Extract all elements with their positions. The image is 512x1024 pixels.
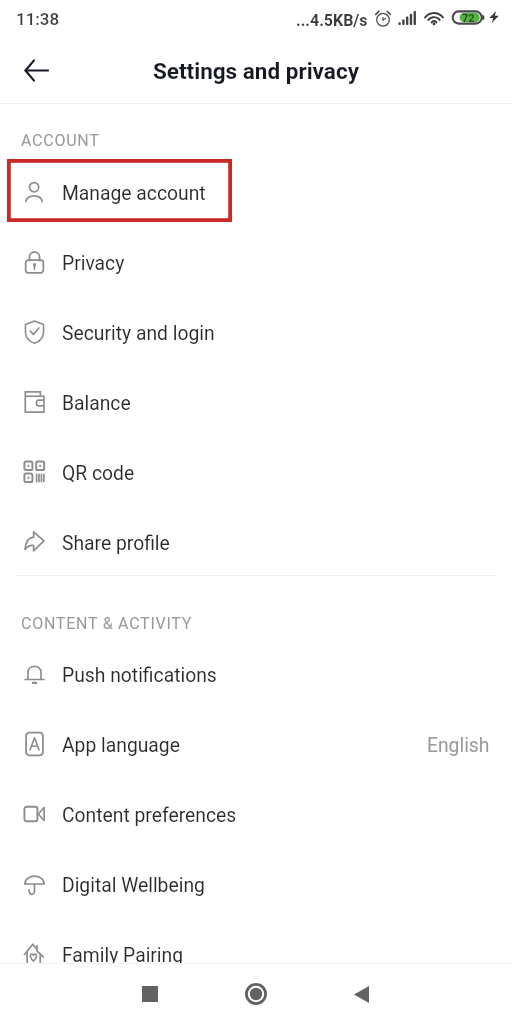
staticText: ...4.5KB/s: [296, 11, 368, 30]
button[interactable]: Share profile: [0, 508, 512, 578]
staticText: Settings and privacy: [153, 58, 359, 84]
button[interactable]: Recent apps: [110, 965, 190, 1024]
staticText: ACCOUNT: [21, 131, 100, 150]
staticText: Digital Wellbeing: [62, 874, 205, 897]
staticText: Push notifications: [62, 664, 217, 687]
button[interactable]: Home: [216, 965, 296, 1024]
staticText: Balance: [62, 392, 131, 415]
button[interactable]: Back: [13, 47, 59, 93]
button[interactable]: Security and login: [0, 298, 512, 368]
staticText: QR code: [62, 462, 135, 485]
button[interactable]: Privacy: [0, 228, 512, 298]
staticText: 11:38: [16, 9, 60, 29]
staticText: App language: [62, 734, 180, 757]
button[interactable]: Balance: [0, 368, 512, 438]
button[interactable]: Family Pairing: [0, 920, 512, 990]
button[interactable]: Manage account: [0, 158, 512, 228]
button[interactable]: QR code: [0, 438, 512, 508]
staticText: 72: [462, 12, 475, 25]
staticText: Share profile: [62, 532, 170, 555]
button[interactable]: App language: [0, 710, 512, 780]
button[interactable]: Push notifications: [0, 640, 512, 710]
button[interactable]: Digital Wellbeing: [0, 850, 512, 920]
staticText: CONTENT & ACTIVITY: [21, 614, 193, 633]
staticText: Privacy: [62, 252, 125, 275]
staticText: Family Pairing: [62, 944, 184, 967]
staticText: Security and login: [62, 322, 215, 345]
button[interactable]: Content preferences: [0, 780, 512, 850]
staticText: Manage account: [62, 182, 206, 205]
staticText: English: [427, 734, 490, 757]
button[interactable]: Back: [321, 965, 401, 1024]
staticText: Content preferences: [62, 804, 237, 827]
